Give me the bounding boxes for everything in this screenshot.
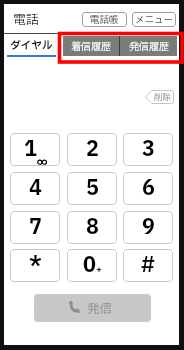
staticText: 着信履歴 (71, 39, 111, 54)
staticText: 2 (86, 134, 99, 165)
button[interactable]: 発信履歴 (120, 36, 177, 56)
staticText: 5 (86, 173, 99, 204)
button[interactable]: 6 (123, 172, 173, 205)
staticText: * (29, 250, 42, 281)
button[interactable]: 2 (67, 133, 117, 166)
button[interactable]: 着信履歴 (63, 36, 119, 56)
staticText: ダイヤル (10, 38, 53, 54)
button[interactable]: 5 (67, 172, 117, 205)
button[interactable]: # (123, 249, 173, 282)
staticText: 0 (83, 250, 96, 281)
staticText: メニュー (135, 13, 174, 27)
staticText: 1 (24, 134, 37, 165)
button[interactable]: 7 (10, 211, 60, 244)
staticText: 電話帳 (90, 13, 119, 27)
button[interactable]: メニュー (132, 12, 176, 27)
button[interactable]: 電話帳 (82, 12, 127, 27)
staticText: 削除 (154, 91, 172, 104)
staticText: 6 (142, 173, 155, 204)
button[interactable]: 発信 (34, 294, 151, 322)
button[interactable]: 8 (67, 211, 117, 244)
button[interactable]: 9 (123, 211, 173, 244)
staticText: # (141, 250, 155, 281)
staticText: 8 (86, 212, 99, 243)
button[interactable]: ダイヤル (4, 35, 60, 60)
staticText: 電話 (13, 10, 40, 29)
staticText: 発信 (87, 300, 113, 319)
button[interactable]: 0 (67, 249, 117, 282)
staticText: 4 (29, 173, 42, 204)
button[interactable]: 削除 (145, 90, 174, 104)
button[interactable]: * (10, 249, 60, 282)
staticText: 9 (142, 212, 155, 243)
staticText: 3 (142, 134, 155, 165)
button[interactable]: 3 (123, 133, 173, 166)
button[interactable]: 1 (10, 133, 60, 166)
staticText: + (96, 263, 102, 277)
button[interactable]: 4 (10, 172, 60, 205)
staticText: 発信履歴 (129, 39, 169, 54)
staticText: 7 (29, 212, 42, 243)
